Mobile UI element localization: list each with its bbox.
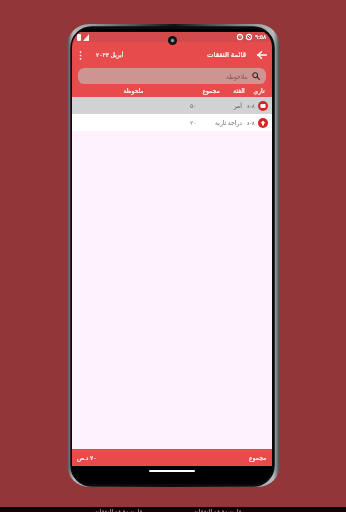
staticText: مقارنة دقيقة للنفقات <box>94 508 146 512</box>
staticText: ٥٠ <box>190 102 197 109</box>
button[interactable]: Back <box>255 48 269 62</box>
staticText: قائمة النفقات <box>207 50 247 60</box>
staticText: تاري <box>253 87 265 94</box>
button[interactable]: Category icon <box>256 99 270 113</box>
staticText: أبريل ٢٠٢٣ <box>96 51 124 59</box>
staticText: ٧٠ د.ص <box>77 454 97 462</box>
staticText: ملحوظة <box>123 87 144 94</box>
button[interactable]: More options <box>74 49 86 61</box>
button[interactable]: مجموع <box>191 84 231 97</box>
staticText: مقارنة دقيقة للنفقات <box>193 508 245 512</box>
staticText: دراجة ثارية <box>214 119 242 127</box>
staticText: الفئة <box>233 87 245 94</box>
button[interactable]: Category icon <box>256 116 270 130</box>
button[interactable]: ٥٠ <box>72 97 272 114</box>
button[interactable]: ملاحوظة <box>78 68 266 84</box>
staticText: ٢٠ <box>190 119 197 126</box>
button[interactable]: الفئة <box>219 84 259 97</box>
staticText: ملاحوظة <box>226 73 248 80</box>
staticText: أمر <box>233 102 242 109</box>
staticText: مجموع <box>249 454 267 461</box>
button[interactable]: ملحوظة <box>113 84 153 97</box>
button[interactable]: ٢٠ <box>72 114 272 131</box>
staticText: ٩:٥٨ <box>255 33 267 41</box>
staticText: ٨-٤ <box>247 119 255 126</box>
staticText: ٨-٤ <box>247 102 255 109</box>
button[interactable]: تاري <box>239 84 272 97</box>
staticText: مجموع <box>202 87 220 94</box>
